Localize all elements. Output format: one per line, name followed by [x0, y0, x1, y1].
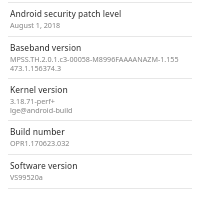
- staticText: VS99520a: [10, 172, 43, 182]
- staticText: Baseband version: [10, 42, 82, 53]
- staticText: 3.18.71-perf+ lge@android-build: [10, 96, 73, 115]
- button[interactable]: Android security patch level: [0, 3, 200, 36]
- button[interactable]: Kernel version: [0, 79, 200, 120]
- button[interactable]: Build number: [0, 121, 200, 154]
- staticText: Build number: [10, 126, 65, 137]
- staticText: MPSS.TH.2.0.1.c3-00058-M8996FAAAANAZM-1.…: [10, 54, 179, 73]
- button[interactable]: Software version: [0, 155, 200, 188]
- staticText: Android security patch level: [10, 8, 122, 19]
- staticText: Software version: [10, 160, 78, 171]
- staticText: Kernel version: [10, 84, 68, 95]
- staticText: August 1, 2018: [10, 20, 61, 30]
- button[interactable]: Baseband version: [0, 37, 200, 78]
- staticText: OPR1.170623.032: [10, 138, 70, 148]
